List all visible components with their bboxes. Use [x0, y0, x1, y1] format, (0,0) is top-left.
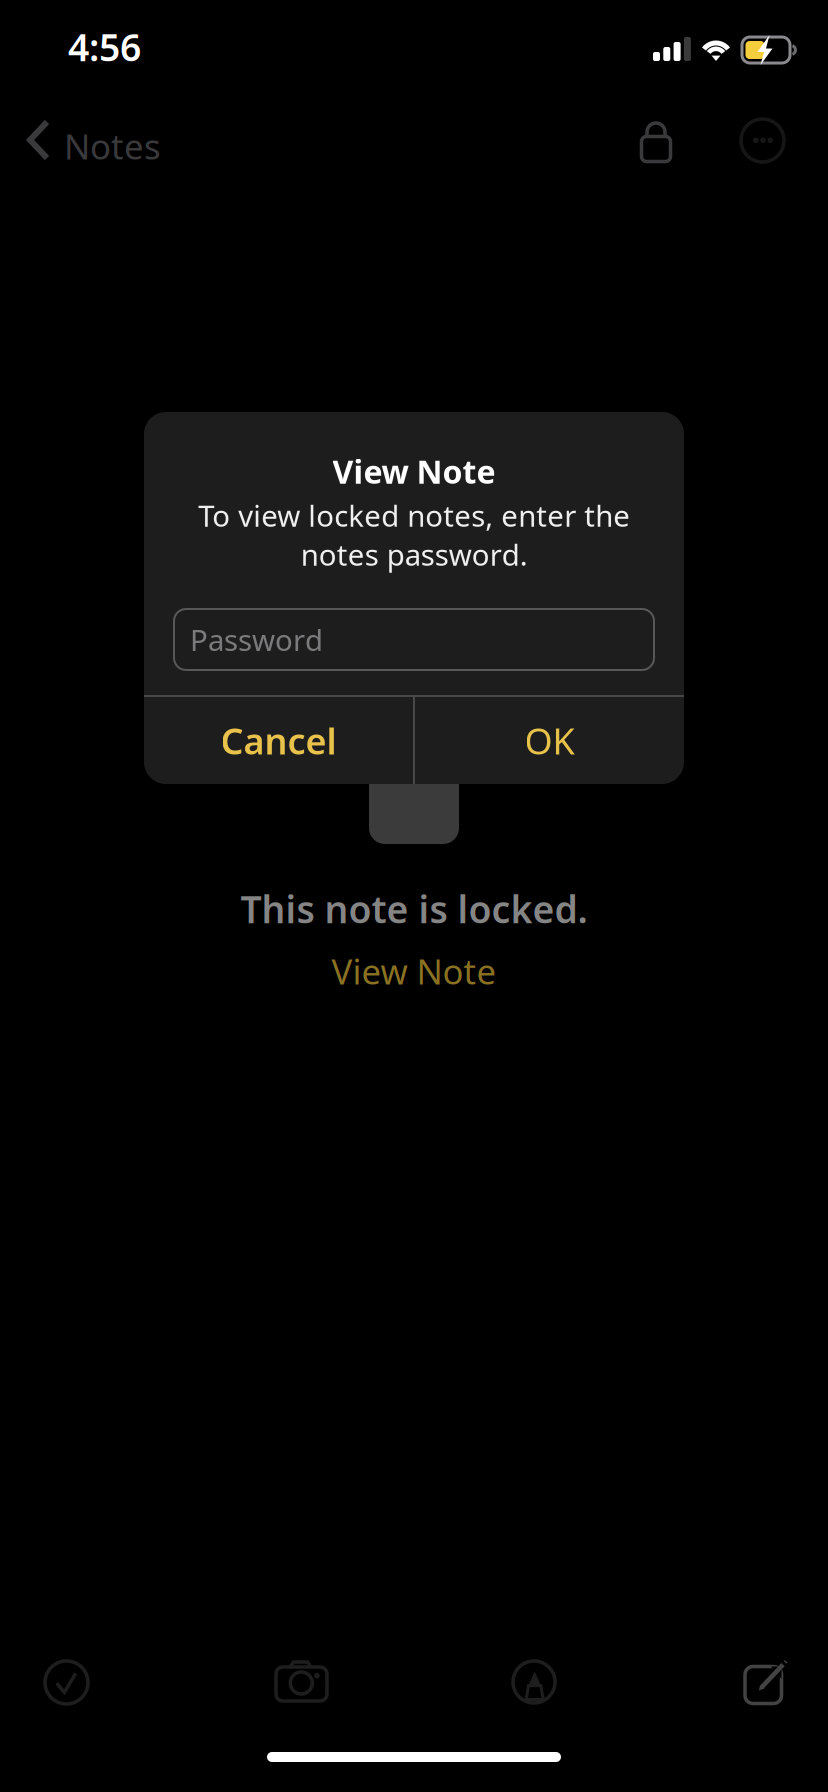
staticText: Password	[190, 620, 323, 659]
staticText: Cancel	[220, 717, 336, 764]
button[interactable]: Checklist	[27, 1643, 106, 1722]
button[interactable]: Camera	[258, 1643, 345, 1719]
staticText: View Note	[332, 450, 495, 492]
button[interactable]: OK	[415, 697, 684, 784]
staticText: OK	[524, 717, 574, 764]
staticText: This note is locked.	[240, 884, 587, 934]
button[interactable]: New Note	[727, 1644, 805, 1722]
button[interactable]: View Note	[294, 942, 534, 1000]
button[interactable]: More	[723, 101, 802, 180]
staticText: View Note	[331, 948, 496, 994]
button[interactable]: Cancel	[144, 697, 413, 784]
button[interactable]: Lock Note	[623, 101, 689, 180]
staticText: To view locked notes, enter the notes pa…	[198, 496, 630, 574]
staticText: Notes	[64, 123, 161, 169]
button[interactable]: Markup	[495, 1643, 573, 1721]
button[interactable]: Notes	[0, 96, 200, 184]
staticText: 4:56	[68, 22, 141, 72]
